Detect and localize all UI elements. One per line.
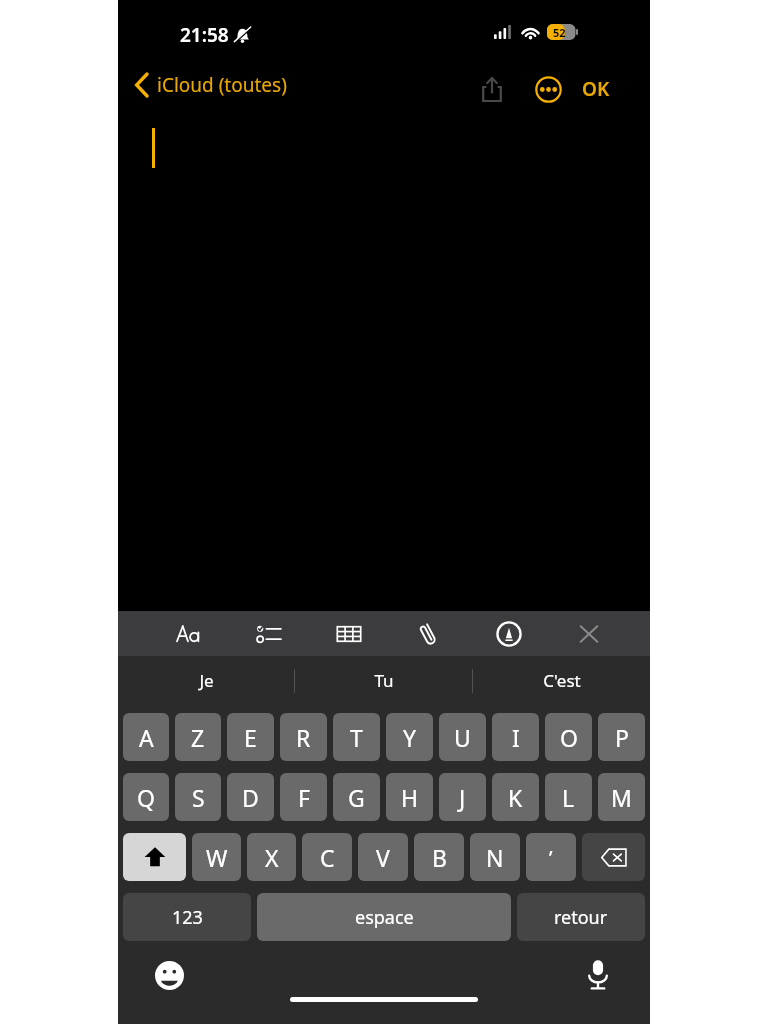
staticText: iCloud (toutes) (157, 72, 287, 98)
button[interactable]: R (280, 713, 327, 761)
staticText: N (486, 842, 504, 873)
button[interactable]: More options (526, 67, 570, 111)
button[interactable]: I (492, 713, 539, 761)
staticText: E (244, 722, 257, 753)
staticText: I (512, 722, 520, 753)
button[interactable]: Dictation (581, 957, 615, 991)
button[interactable]: K (492, 773, 539, 821)
button[interactable]: Checklist (248, 611, 290, 656)
staticText: H (401, 782, 419, 813)
button[interactable]: Text format (168, 611, 210, 656)
button[interactable]: Close keyboard (568, 611, 610, 656)
staticText: 21:58 (180, 22, 229, 48)
staticText: W (206, 842, 228, 873)
staticText: S (192, 782, 205, 813)
button[interactable]: L (545, 773, 592, 821)
staticText: Z (191, 722, 205, 753)
staticText: OK (582, 76, 610, 102)
button[interactable]: C'est (473, 656, 650, 705)
staticText: T (350, 722, 363, 753)
button[interactable]: Markup (488, 611, 530, 656)
button[interactable]: O (545, 713, 592, 761)
button[interactable]: Z (175, 713, 221, 761)
button[interactable]: C (302, 833, 352, 881)
button[interactable]: E (227, 713, 274, 761)
button[interactable]: ’ (526, 833, 576, 881)
staticText: D (242, 782, 259, 813)
button[interactable]: G (333, 773, 380, 821)
staticText: C (320, 842, 335, 873)
staticText: Je (199, 669, 214, 692)
button[interactable]: Table (328, 611, 370, 656)
staticText: retour (554, 905, 608, 930)
staticText: R (296, 722, 311, 753)
button[interactable]: espace (257, 893, 511, 941)
staticText: K (508, 782, 523, 813)
staticText: 52 (553, 25, 566, 40)
button[interactable]: B (414, 833, 464, 881)
button[interactable]: iCloud (toutes) (132, 68, 291, 102)
button[interactable]: Q (123, 773, 169, 821)
staticText: A (139, 722, 154, 753)
button[interactable]: Y (386, 713, 433, 761)
button[interactable]: X (247, 833, 296, 881)
button[interactable]: Je (118, 656, 294, 705)
staticText: M (611, 782, 632, 813)
staticText: G (348, 782, 365, 813)
button[interactable]: A (123, 713, 169, 761)
staticText: P (615, 722, 629, 753)
button[interactable]: U (439, 713, 486, 761)
button[interactable]: N (470, 833, 520, 881)
button[interactable]: J (439, 773, 486, 821)
button[interactable]: Attach (408, 611, 450, 656)
button[interactable]: Share (470, 67, 514, 111)
button[interactable]: T (333, 713, 380, 761)
button[interactable]: Tu (295, 656, 472, 705)
button[interactable]: retour (517, 893, 645, 941)
button[interactable]: OK (574, 66, 618, 112)
button[interactable]: Emoji (153, 959, 185, 991)
staticText: J (459, 782, 466, 813)
staticText: Q (137, 782, 155, 813)
button[interactable]: H (386, 773, 433, 821)
button[interactable]: P (598, 713, 645, 761)
staticText: V (376, 842, 390, 873)
staticText: O (560, 722, 578, 753)
staticText: Tu (374, 669, 394, 692)
staticText: U (454, 722, 471, 753)
button[interactable]: Shift (123, 833, 186, 881)
staticText: F (298, 782, 310, 813)
staticText: Y (403, 722, 417, 753)
button[interactable]: D (227, 773, 274, 821)
button[interactable]: M (598, 773, 645, 821)
button[interactable]: F (280, 773, 327, 821)
staticText: espace (355, 905, 414, 930)
staticText: L (562, 782, 575, 813)
button[interactable]: Backspace (582, 833, 645, 881)
staticText: C'est (543, 669, 581, 692)
button[interactable]: 123 (123, 893, 251, 941)
button[interactable]: V (358, 833, 408, 881)
button[interactable]: W (192, 833, 241, 881)
staticText: B (432, 842, 447, 873)
staticText: X (265, 842, 279, 873)
staticText: ’ (549, 844, 553, 871)
button[interactable]: S (175, 773, 221, 821)
staticText: 123 (172, 905, 203, 930)
